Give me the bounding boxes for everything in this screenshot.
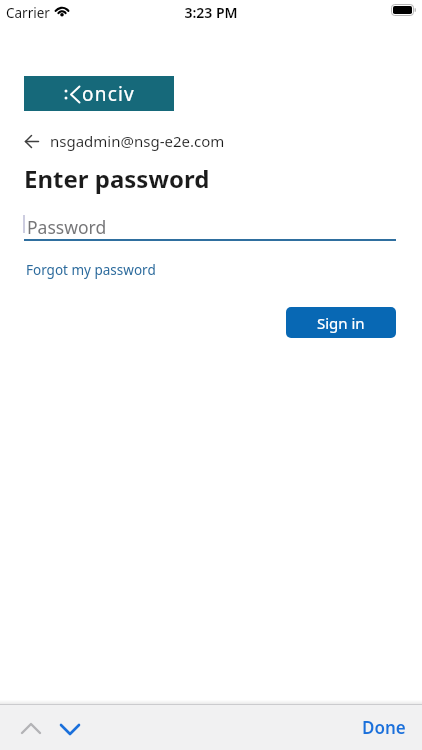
button[interactable]: [53, 713, 87, 741]
staticText: Enter password: [24, 162, 210, 195]
staticText: Carrier: [6, 4, 50, 22]
button[interactable]: [14, 713, 48, 741]
button[interactable]: Forgot my password: [26, 261, 156, 279]
staticText: nsgadmin@nsg-e2e.com: [50, 131, 225, 151]
staticText: onciv: [82, 81, 135, 107]
staticText: Password: [27, 215, 107, 239]
button[interactable]: nsgadmin@nsg-e2e.com: [24, 131, 225, 151]
button[interactable]: Sign in: [286, 307, 396, 338]
staticText: Sign in: [317, 313, 365, 333]
staticText: 3:23 PM: [0, 3, 422, 22]
button[interactable]: Done: [362, 716, 406, 739]
staticText: Done: [362, 716, 406, 739]
